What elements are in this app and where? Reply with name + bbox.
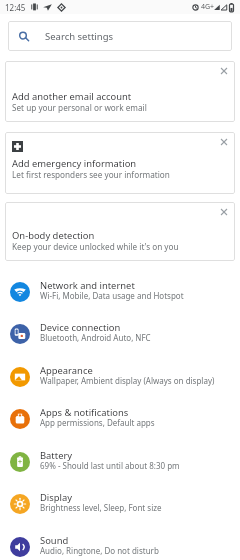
- staticText: 12:45: [5, 2, 26, 13]
- button[interactable]: Network and internet: [0, 271, 240, 313]
- button[interactable]: Sound: [0, 526, 240, 560]
- button[interactable]: Add another email account: [5, 61, 235, 122]
- button[interactable]: Device connection: [0, 313, 240, 355]
- staticText: Add emergency information: [12, 157, 137, 170]
- staticText: Network and internet: [40, 279, 135, 292]
- button[interactable]: Dismiss suggestion: [215, 133, 233, 151]
- staticText: Display: [40, 491, 73, 504]
- staticText: Apps & notifications: [40, 406, 129, 419]
- button[interactable]: Apps & notifications: [0, 398, 240, 440]
- staticText: Bluetooth, Android Auto, NFC: [40, 332, 151, 343]
- staticText: 69% - Should last until about 8:30 pm: [40, 460, 180, 471]
- staticText: Sound: [40, 534, 69, 547]
- staticText: Appearance: [40, 364, 93, 377]
- staticText: Brightness level, Sleep, Font size: [40, 502, 162, 513]
- button[interactable]: Appearance: [0, 356, 240, 398]
- staticText: Wi-Fi, Mobile, Data usage and Hotspot: [40, 290, 184, 301]
- button[interactable]: Dismiss suggestion: [215, 62, 233, 80]
- staticText: Search settings: [45, 30, 114, 43]
- staticText: Keep your device unlocked while it's on …: [12, 241, 179, 252]
- staticText: Device connection: [40, 321, 121, 334]
- button[interactable]: Dismiss suggestion: [215, 203, 233, 221]
- staticText: Set up your personal or work email: [12, 102, 147, 113]
- staticText: Battery: [40, 449, 73, 462]
- staticText: Audio, Ringtone, Do not disturb: [40, 545, 159, 556]
- button[interactable]: On-body detection: [5, 202, 235, 261]
- button[interactable]: Battery: [0, 441, 240, 483]
- staticText: Add another email account: [12, 90, 132, 103]
- button[interactable]: Search settings: [8, 21, 232, 51]
- button[interactable]: Add emergency information: [5, 132, 235, 194]
- staticText: Let first responders see your informatio…: [12, 169, 170, 180]
- staticText: 4G+: [201, 2, 215, 12]
- staticText: Wallpaper, Ambient display (Always on di…: [40, 375, 215, 386]
- staticText: App permissions, Default apps: [40, 417, 155, 428]
- button[interactable]: Display: [0, 483, 240, 525]
- staticText: On-body detection: [12, 229, 95, 242]
